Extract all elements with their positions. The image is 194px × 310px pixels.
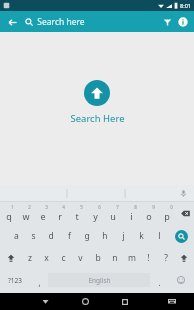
button[interactable]: 5 (68, 202, 86, 225)
button[interactable]: z (21, 247, 38, 269)
button[interactable]: 4 (51, 202, 68, 225)
staticText: 8 (134, 204, 137, 210)
button[interactable]: Home (74, 293, 96, 310)
staticText: v (78, 252, 83, 264)
button[interactable]: 1 (0, 202, 17, 225)
button[interactable]: 6 (86, 202, 104, 225)
button[interactable]: 0 (158, 202, 176, 225)
staticText: n (112, 252, 118, 264)
button[interactable]: ! (140, 247, 157, 269)
staticText: 8:01 (180, 2, 191, 9)
button[interactable]: s (25, 225, 42, 247)
staticText: 4 (62, 204, 65, 210)
staticText: 6 (98, 204, 101, 210)
button[interactable]: m (123, 247, 140, 269)
staticText: j (122, 230, 125, 242)
staticText: f (68, 230, 71, 242)
staticText: g (84, 230, 90, 242)
staticText: d (48, 230, 54, 242)
staticText: . (158, 277, 161, 288)
staticText: r (58, 210, 62, 222)
staticText: y (93, 210, 98, 222)
button[interactable]: g (78, 225, 96, 247)
button[interactable]: , (30, 269, 48, 291)
staticText: 1 (11, 204, 14, 210)
staticText: 5 (80, 204, 83, 210)
staticText: ! (147, 252, 150, 264)
staticText: 0 (170, 204, 173, 210)
staticText: ? (164, 252, 168, 264)
staticText: i (130, 210, 133, 222)
button[interactable]: Emoji (168, 269, 194, 291)
staticText: u (110, 210, 116, 222)
staticText: , (38, 277, 41, 288)
staticText: a (14, 230, 19, 242)
staticText: 7 (116, 204, 119, 210)
button[interactable]: h (96, 225, 114, 247)
staticText: x (44, 252, 49, 264)
staticText: h (102, 230, 108, 242)
button[interactable]: Search here (25, 11, 85, 32)
button[interactable]: Search Here (84, 80, 110, 106)
button[interactable]: 9 (140, 202, 158, 225)
button[interactable]: ? (157, 247, 174, 269)
button[interactable]: a (8, 225, 25, 247)
button[interactable]: Filter (159, 14, 175, 30)
staticText: w (22, 210, 30, 222)
staticText: e (40, 210, 46, 222)
button[interactable]: d (42, 225, 60, 247)
button[interactable]: v (72, 247, 89, 269)
staticText: Search Here (70, 112, 125, 125)
button[interactable]: b (89, 247, 106, 269)
staticText: ?123 (8, 276, 22, 285)
staticText: c (61, 252, 66, 264)
button[interactable]: ?123 (0, 269, 30, 291)
staticText: b (95, 252, 101, 264)
staticText: o (146, 210, 152, 222)
button[interactable]: . (150, 269, 168, 291)
button[interactable]: English (48, 273, 150, 287)
button[interactable]: k (132, 225, 150, 247)
staticText: t (75, 210, 79, 222)
button[interactable]: Shift (0, 247, 21, 269)
button[interactable]: Search (168, 225, 194, 247)
button[interactable]: Recents (114, 293, 136, 310)
staticText: English (88, 276, 111, 285)
button[interactable]: 8 (122, 202, 140, 225)
staticText: Search here (37, 16, 85, 28)
button[interactable]: Voice input (177, 187, 190, 200)
staticText: q (6, 210, 12, 222)
button[interactable]: n (106, 247, 123, 269)
staticText: s (31, 230, 36, 242)
button[interactable]: Info (175, 14, 191, 30)
button[interactable]: j (114, 225, 132, 247)
staticText: 2 (28, 204, 31, 210)
staticText: m (128, 252, 136, 264)
staticText: 3 (45, 204, 48, 210)
button[interactable]: l (150, 225, 168, 247)
button[interactable]: x (38, 247, 55, 269)
button[interactable]: c (55, 247, 72, 269)
button[interactable]: Back (34, 293, 56, 310)
staticText: k (139, 230, 144, 242)
staticText: p (164, 210, 170, 222)
button[interactable]: 2 (17, 202, 34, 225)
staticText: 9 (152, 204, 155, 210)
button[interactable]: Hide keyboard (161, 293, 183, 310)
staticText: z (28, 252, 32, 264)
staticText: l (158, 230, 161, 242)
button[interactable]: Backspace (176, 202, 194, 225)
button[interactable]: 7 (104, 202, 122, 225)
button[interactable]: 3 (34, 202, 51, 225)
button[interactable]: f (60, 225, 78, 247)
button[interactable]: Shift (174, 247, 194, 269)
button[interactable]: Back (4, 14, 20, 30)
